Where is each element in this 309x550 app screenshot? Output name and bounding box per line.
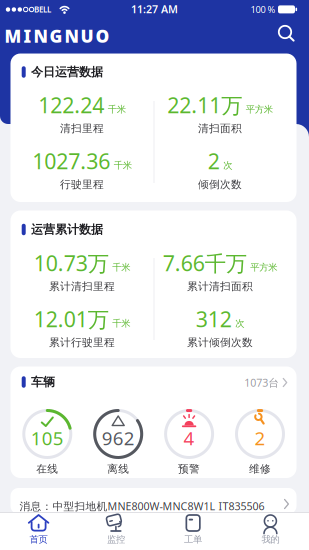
- staticText: 首页: [30, 534, 48, 545]
- staticText: 千米: [112, 262, 130, 273]
- staticText: 11:27 AM: [131, 2, 178, 16]
- staticText: 维修: [249, 462, 271, 475]
- button[interactable]: Search: [275, 23, 297, 45]
- button[interactable]: 监控: [101, 514, 131, 546]
- staticText: 平方米: [250, 262, 277, 273]
- button[interactable]: 我的: [255, 514, 285, 546]
- staticText: 在线: [36, 462, 58, 475]
- staticText: 次: [235, 318, 244, 329]
- staticText: 22.11万: [167, 91, 242, 119]
- button[interactable]: 105: [22, 409, 72, 479]
- staticText: 2: [254, 426, 265, 450]
- staticText: 1073台: [244, 375, 279, 390]
- staticText: 预警: [178, 462, 200, 475]
- staticText: 千米: [114, 160, 132, 171]
- staticText: 运营累计数据: [31, 222, 103, 237]
- staticText: 倾倒次数: [198, 178, 242, 191]
- button[interactable]: 4: [164, 409, 214, 479]
- staticText: 2: [208, 147, 220, 175]
- staticText: 12.01万: [34, 305, 109, 333]
- staticText: 清扫面积: [198, 122, 242, 135]
- button[interactable]: 962: [93, 409, 143, 479]
- staticText: 离线: [107, 462, 129, 475]
- staticText: 车辆: [31, 375, 55, 389]
- staticText: 消息：中型扫地机MNE800W-MNC8W1L IT835506: [19, 499, 264, 513]
- staticText: 监控: [107, 534, 125, 545]
- staticText: 清扫里程: [60, 122, 104, 135]
- button[interactable]: 1073台: [244, 375, 288, 390]
- button[interactable]: 2: [235, 409, 285, 479]
- staticText: 7.66千万: [163, 249, 247, 277]
- staticText: 累计行驶里程: [49, 336, 115, 349]
- staticText: MINGNUO: [4, 24, 109, 47]
- button[interactable]: 消息：中型扫地机MNE800W-MNC8W1L IT835506: [10, 488, 296, 514]
- staticText: 962: [102, 426, 135, 450]
- staticText: 122.24: [38, 91, 104, 119]
- staticText: 我的: [261, 534, 279, 545]
- staticText: 行驶里程: [60, 178, 104, 191]
- staticText: 1027.36: [32, 147, 110, 175]
- staticText: 100 %: [250, 3, 275, 16]
- button[interactable]: 首页: [24, 514, 54, 546]
- staticText: 10.73万: [34, 249, 109, 277]
- staticText: BELL: [34, 4, 51, 15]
- staticText: 千米: [112, 318, 130, 329]
- staticText: 累计清扫面积: [187, 280, 253, 293]
- staticText: 312: [196, 305, 232, 333]
- button[interactable]: 工单: [178, 514, 208, 546]
- staticText: 4: [184, 426, 195, 450]
- staticText: 次: [223, 160, 232, 171]
- staticText: 工单: [184, 534, 202, 545]
- staticText: 今日运营数据: [31, 65, 103, 79]
- staticText: 平方米: [246, 104, 273, 115]
- staticText: 累计倾倒次数: [187, 336, 253, 349]
- staticText: 千米: [108, 104, 126, 115]
- staticText: 105: [31, 426, 64, 450]
- staticText: 累计清扫里程: [49, 280, 115, 293]
